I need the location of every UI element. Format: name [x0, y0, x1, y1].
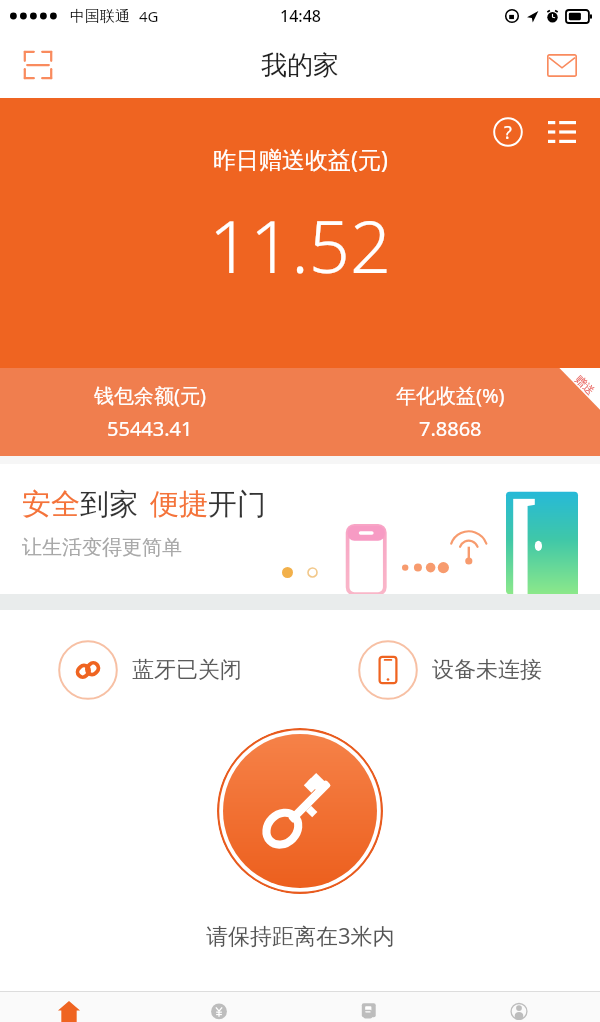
button[interactable]: Wallet	[150, 992, 300, 1022]
staticText: 设备未连接	[432, 656, 542, 684]
staticText: 请保持距离在3米内	[206, 920, 395, 950]
staticText: 7.8868	[419, 415, 482, 442]
staticText: 安全	[22, 486, 80, 523]
staticText: 便捷	[150, 486, 208, 523]
button[interactable]: 设备未连接	[300, 622, 600, 718]
button[interactable]: Scan QR code	[12, 39, 64, 91]
button[interactable]: Devices	[300, 992, 450, 1022]
button[interactable]: 蓝牙已关闭	[0, 622, 300, 718]
staticText: 年化收益(%)	[396, 382, 505, 409]
staticText: 蓝牙已关闭	[132, 656, 242, 684]
button[interactable]: Unlock door	[217, 728, 383, 894]
button[interactable]: Home	[0, 992, 150, 1022]
staticText: ?	[504, 120, 512, 145]
button[interactable]: 钱包余额(元)	[0, 368, 600, 456]
staticText: 4G	[139, 6, 159, 26]
staticText: 14:48	[280, 5, 321, 27]
button[interactable]: 安全	[0, 464, 600, 594]
staticText: 昨日赠送收益(元)	[213, 143, 388, 174]
staticText: 开门	[208, 486, 266, 523]
staticText: 到家	[80, 486, 138, 523]
button[interactable]: Help	[488, 112, 528, 152]
staticText: 让生活变得更简单	[22, 535, 182, 560]
staticText: 我的家	[261, 49, 339, 82]
button[interactable]: Messages	[536, 39, 588, 91]
button[interactable]: Menu	[542, 112, 582, 152]
staticText: 11.52	[209, 196, 392, 294]
staticText: 中国联通	[70, 7, 130, 26]
staticText: 赠送	[572, 372, 598, 398]
staticText: 钱包余额(元)	[94, 382, 206, 409]
staticText: 55443.41	[107, 415, 193, 442]
button[interactable]: Profile	[450, 992, 600, 1022]
